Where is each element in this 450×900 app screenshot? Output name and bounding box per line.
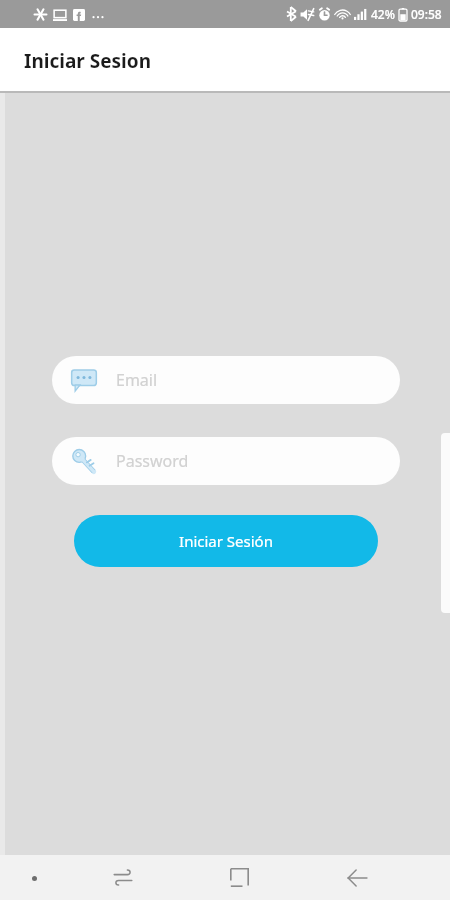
staticText: 42% (371, 6, 395, 22)
button[interactable]: Switch keyboard (64, 855, 181, 900)
button[interactable]: Email input field (52, 356, 400, 404)
button[interactable]: Back (298, 855, 415, 900)
staticText: 09:58 (411, 6, 442, 22)
staticText: Iniciar Sesion (24, 48, 151, 74)
staticText: Email (116, 369, 158, 391)
button[interactable]: Home (181, 855, 298, 900)
button[interactable]: Password input field (52, 437, 400, 485)
button[interactable]: Indicator (22, 866, 46, 890)
staticText: Iniciar Sesión (179, 531, 273, 551)
button[interactable]: Iniciar Sesión (74, 515, 378, 567)
staticText: Password (116, 450, 189, 472)
